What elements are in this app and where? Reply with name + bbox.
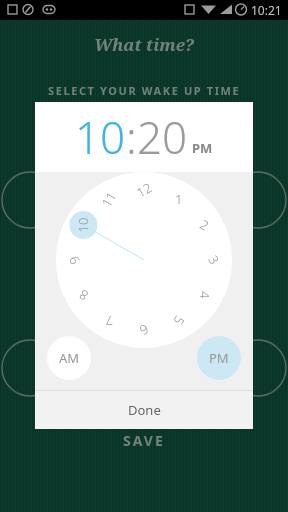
staticText: What time?: [94, 33, 194, 56]
staticText: 10:21: [251, 2, 282, 18]
staticText: SAVE: [123, 431, 165, 450]
staticText: :: [126, 107, 137, 167]
button[interactable]: PM: [197, 336, 241, 380]
staticText: SELECT YOUR WAKE UP TIME: [48, 83, 241, 98]
button[interactable]: Done: [35, 391, 253, 429]
button[interactable]: Clock hour selector: [35, 172, 253, 390]
button[interactable]: SAVE: [0, 429, 288, 451]
staticText: 20: [137, 107, 188, 167]
staticText: 10: [75, 107, 126, 167]
staticText: Done: [128, 401, 161, 419]
staticText: PM: [209, 349, 229, 367]
button[interactable]: 10: [75, 107, 126, 167]
button[interactable]: PM: [192, 139, 213, 157]
button[interactable]: AM: [47, 336, 91, 380]
button[interactable]: 20: [137, 107, 188, 167]
staticText: AM: [59, 349, 80, 367]
staticText: PM: [192, 139, 213, 157]
